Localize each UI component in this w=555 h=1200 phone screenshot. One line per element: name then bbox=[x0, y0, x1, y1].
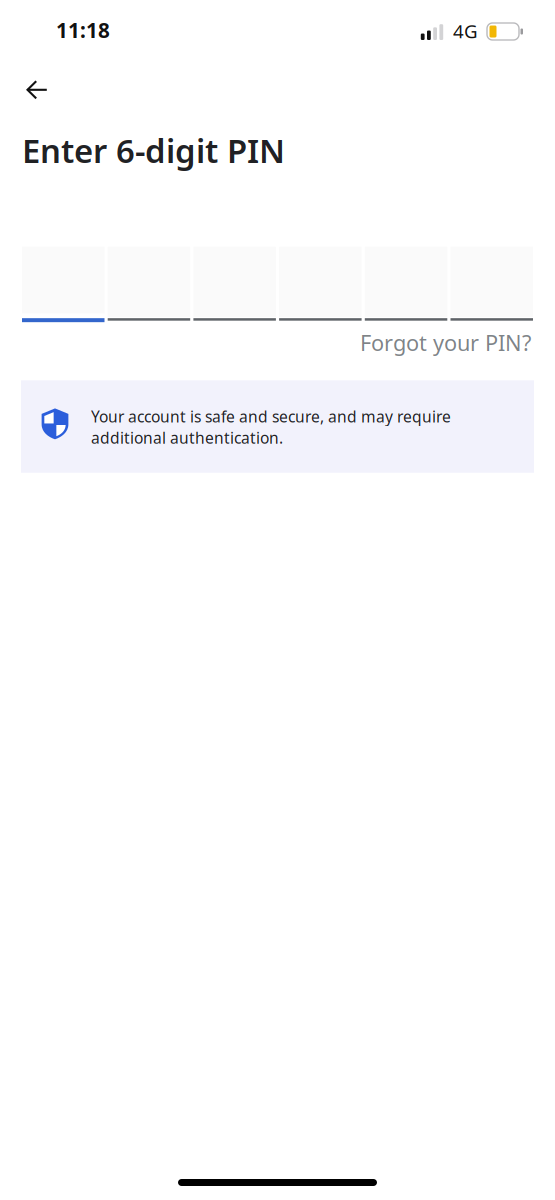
button[interactable]: Forgot your PIN? bbox=[360, 328, 531, 357]
button[interactable]: PIN digit 2 bbox=[108, 247, 190, 323]
button[interactable]: PIN digit 6 bbox=[450, 247, 533, 323]
button[interactable]: PIN digit 3 bbox=[193, 247, 276, 323]
button[interactable]: PIN digit 1 bbox=[22, 247, 104, 323]
button[interactable]: Back bbox=[11, 67, 63, 113]
staticText: Enter 6-digit PIN bbox=[22, 128, 285, 173]
staticText: 11:18 bbox=[56, 16, 110, 44]
button[interactable]: PIN digit 4 bbox=[279, 247, 362, 323]
button[interactable]: PIN digit 5 bbox=[365, 247, 447, 323]
staticText: Your account is safe and secure, and may… bbox=[91, 406, 451, 448]
staticText: 4G bbox=[453, 18, 478, 44]
staticText: Forgot your PIN? bbox=[360, 328, 531, 357]
